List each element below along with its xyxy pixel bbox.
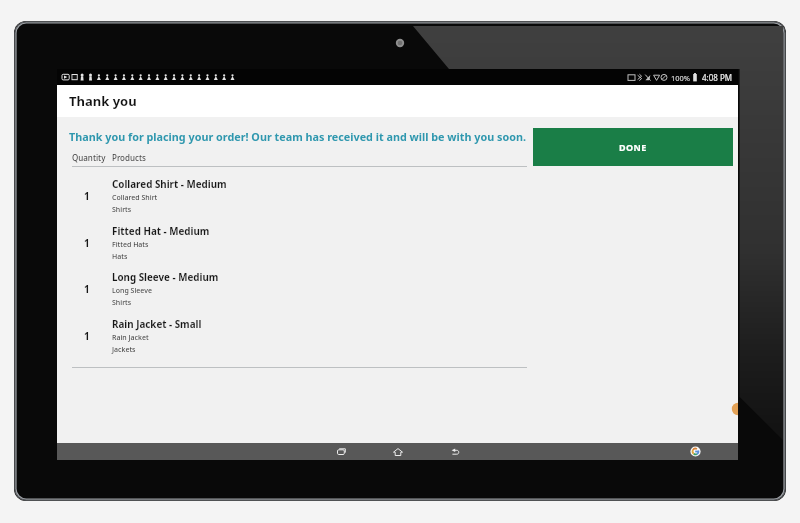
- staticText: Fitted Hats: [112, 240, 149, 250]
- button[interactable]: 1: [57, 174, 738, 220]
- staticText: 1: [84, 190, 90, 203]
- staticText: Quantity: [72, 152, 106, 163]
- staticText: Thank you: [69, 92, 137, 110]
- button[interactable]: Home: [383, 443, 413, 460]
- button[interactable]: 1: [57, 267, 738, 313]
- staticText: Shirts: [112, 298, 132, 308]
- staticText: 1: [84, 330, 90, 343]
- staticText: Shirts: [112, 205, 132, 215]
- button[interactable]: DONE: [533, 128, 733, 166]
- button[interactable]: 1: [57, 314, 738, 360]
- staticText: Collared Shirt - Medium: [112, 178, 227, 191]
- button[interactable]: Back: [440, 443, 470, 460]
- staticText: Long Sleeve - Medium: [112, 271, 219, 284]
- staticText: Fitted Hat - Medium: [112, 225, 210, 238]
- button[interactable]: Recents: [326, 443, 356, 460]
- staticText: Hats: [112, 252, 128, 262]
- staticText: Jackets: [112, 345, 136, 355]
- staticText: 1: [84, 237, 90, 250]
- button[interactable]: Google Assistant: [690, 446, 701, 457]
- staticText: Collared Shirt: [112, 193, 158, 203]
- staticText: 100%: [671, 73, 691, 83]
- staticText: Products: [112, 152, 146, 163]
- staticText: 1: [84, 283, 90, 296]
- staticText: Rain Jacket - Small: [112, 318, 202, 331]
- staticText: DONE: [619, 141, 647, 153]
- button[interactable]: 1: [57, 221, 738, 267]
- staticText: Long Sleeve: [112, 286, 152, 296]
- staticText: Thank you for placing your order! Our te…: [69, 129, 527, 144]
- staticText: 4:08 PM: [702, 72, 733, 83]
- staticText: Rain Jacket: [112, 333, 149, 343]
